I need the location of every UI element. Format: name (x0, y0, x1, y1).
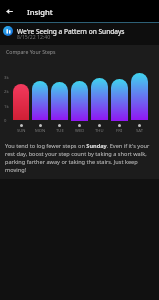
staticText: Insight (27, 7, 53, 17)
staticText: TUE (56, 128, 64, 134)
staticText: 1k (4, 104, 9, 110)
staticText: THU (95, 128, 104, 134)
staticText: We're Seeing a Pattern on Sundays (17, 27, 125, 36)
staticText: FRI (116, 128, 123, 134)
staticText: SAT (136, 128, 144, 134)
button[interactable]: Back (3, 5, 15, 17)
staticText: SUN (17, 128, 26, 134)
staticText: MON (35, 128, 46, 134)
button[interactable]: We're Seeing a Pattern on Sundays (0, 23, 159, 45)
staticText: 3k (4, 75, 9, 81)
staticText: 2k (4, 89, 9, 95)
staticText: You tend to log fewer steps on Sunday. E… (5, 142, 153, 174)
staticText: 0 (4, 118, 7, 124)
staticText: 8/15/22 12:40 (17, 33, 51, 40)
staticText: Compare Your Steps (6, 48, 56, 55)
staticText: WED (75, 128, 85, 134)
